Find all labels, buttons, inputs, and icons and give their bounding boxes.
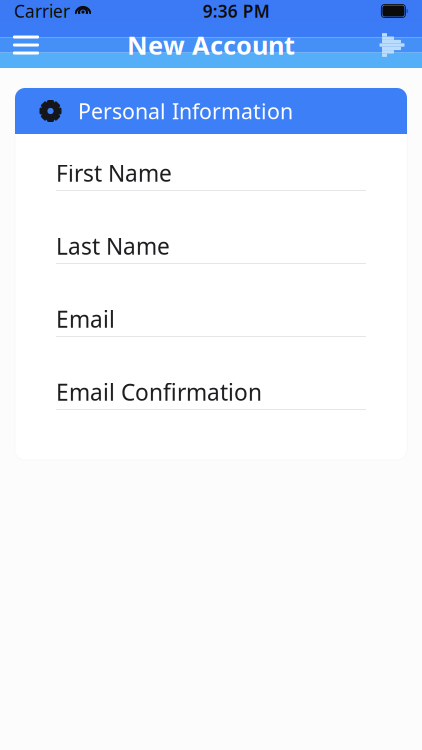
staticText: Last Name xyxy=(56,231,170,261)
staticText: Personal Information xyxy=(78,97,293,125)
button[interactable]: Send xyxy=(370,22,422,68)
button[interactable]: Email xyxy=(15,302,407,375)
staticText: Carrier xyxy=(14,0,70,22)
staticText: 9:36 PM xyxy=(203,0,270,22)
staticText: Email xyxy=(56,304,115,334)
button[interactable]: Last Name xyxy=(15,229,407,302)
button[interactable]: Email Confirmation xyxy=(15,375,407,448)
button[interactable]: First Name xyxy=(15,156,407,229)
staticText: New Account xyxy=(127,28,295,62)
button[interactable]: Menu xyxy=(0,22,52,68)
staticText: Email Confirmation xyxy=(56,377,262,407)
staticText: First Name xyxy=(56,158,172,188)
